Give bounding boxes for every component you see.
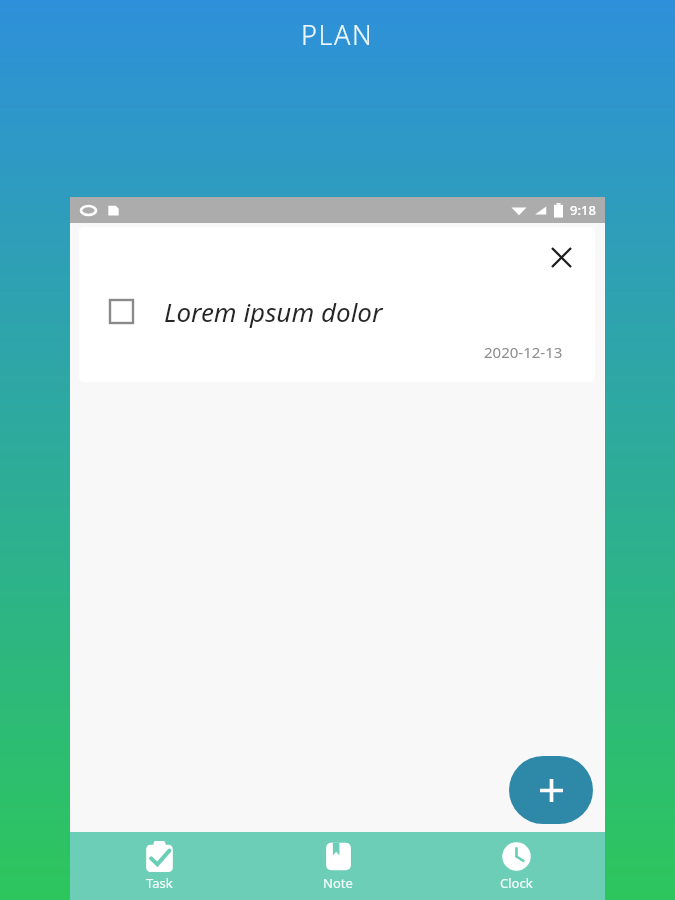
staticText: 9:18 <box>570 201 596 219</box>
staticText: Task <box>146 874 173 892</box>
button[interactable]: Toggle task complete <box>103 293 139 329</box>
button[interactable]: Close <box>79 227 595 382</box>
button[interactable]: Task <box>70 832 249 900</box>
staticText: 2020-12-13 <box>484 342 563 362</box>
button[interactable]: Note <box>249 832 427 900</box>
button[interactable]: Add <box>509 756 593 824</box>
staticText: PLAN <box>301 16 374 53</box>
button[interactable]: Clock <box>427 832 605 900</box>
staticText: Note <box>323 874 353 892</box>
staticText: Lorem ipsum dolor <box>164 294 383 329</box>
staticText: Clock <box>500 874 533 892</box>
button[interactable]: Close <box>543 239 579 275</box>
